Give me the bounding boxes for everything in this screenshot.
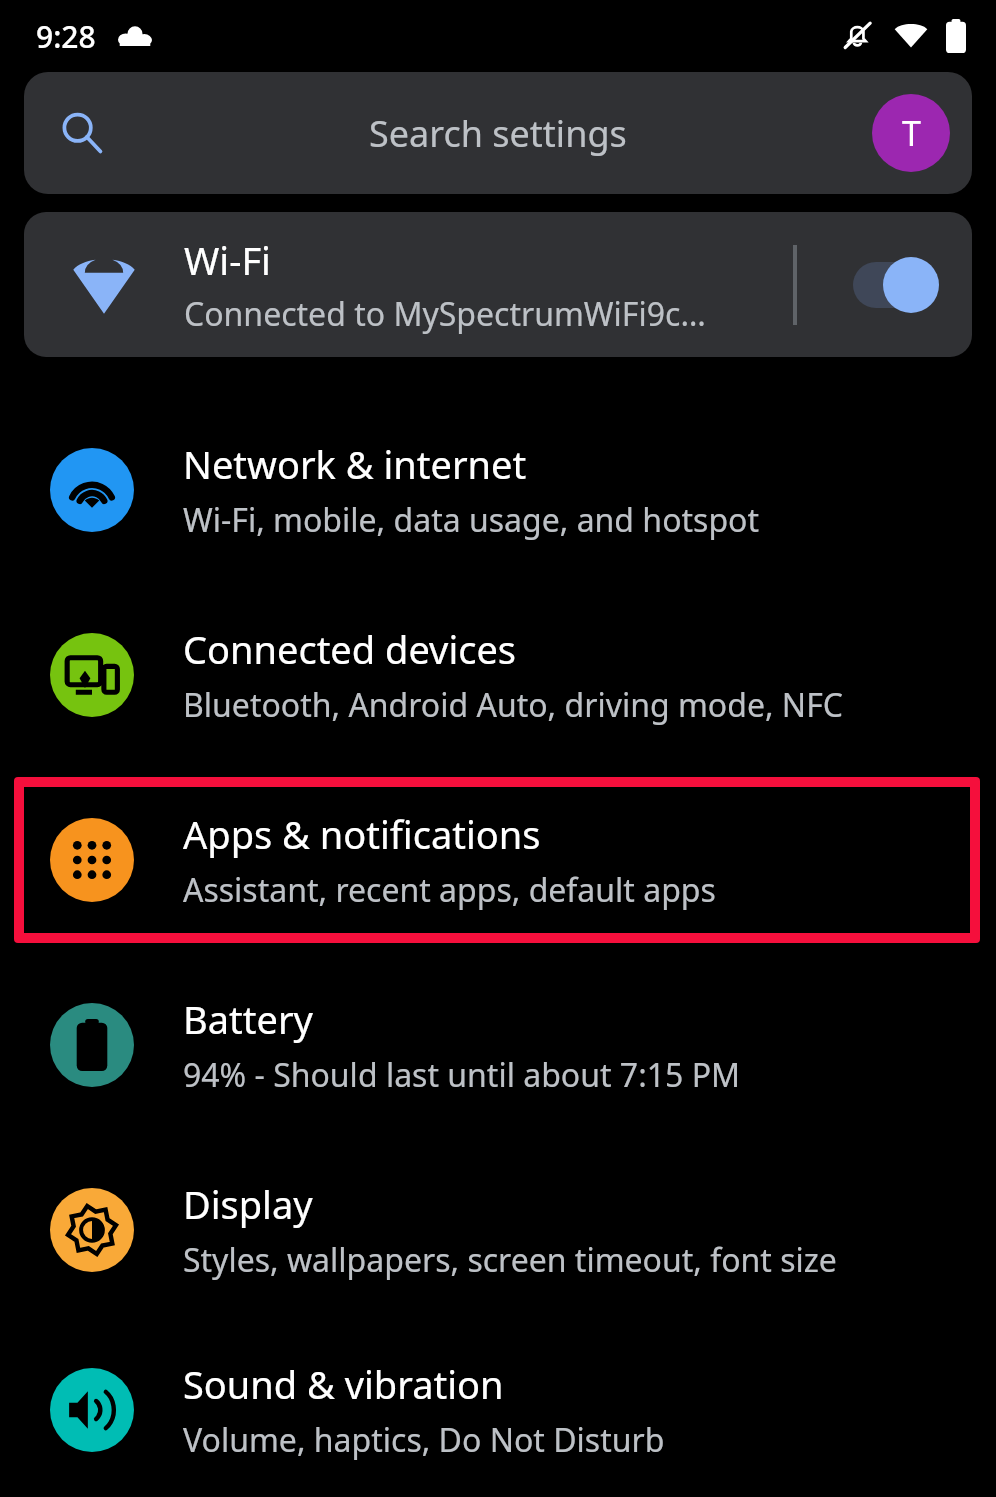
button[interactable]: Network & internet [0,415,996,565]
staticText: 9:28 [36,16,96,57]
staticText: Wi-Fi [184,234,271,286]
button[interactable]: Battery [0,970,996,1120]
button[interactable]: Display [0,1155,996,1305]
button[interactable]: Account [872,94,950,172]
staticText: T [902,110,921,156]
staticText: Network & internet [183,438,527,490]
staticText: Apps & notifications [183,808,541,860]
staticText: Wi-Fi, mobile, data usage, and hotspot [183,498,759,542]
staticText: Connected devices [183,623,517,675]
button[interactable]: Wi-Fi [24,212,972,357]
button[interactable]: Sound & vibration [0,1335,996,1485]
staticText: Assistant, recent apps, default apps [183,868,716,912]
staticText: Volume, haptics, Do Not Disturb [183,1418,665,1462]
button[interactable]: Connected devices [0,600,996,750]
staticText: Search settings [369,109,627,158]
button[interactable]: Search settings [24,72,972,194]
staticText: Connected to MySpectrumWiFi9c… [184,292,706,336]
staticText: Styles, wallpapers, screen timeout, font… [183,1238,837,1282]
staticText: Battery [183,993,313,1045]
button[interactable]: Wi-Fi toggle [797,212,972,357]
button[interactable]: Apps & notifications [0,785,996,935]
staticText: Sound & vibration [183,1358,504,1410]
staticText: Display [183,1178,313,1230]
staticText: 94% - Should last until about 7:15 PM [183,1053,741,1097]
staticText: Bluetooth, Android Auto, driving mode, N… [183,683,844,727]
